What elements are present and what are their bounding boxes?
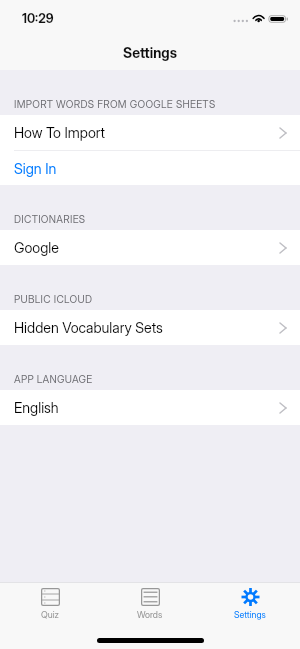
button[interactable]: Quiz [0,583,100,632]
staticText: Quiz [41,609,59,620]
staticText: PUBLIC ICLOUD [14,293,93,305]
staticText: 10:29 [22,11,54,26]
staticText: Words [137,609,163,620]
staticText: Settings [123,44,178,61]
staticText: Hidden Vocabulary Sets [14,319,163,336]
staticText: APP LANGUAGE [14,373,93,385]
button[interactable]: Google [0,230,300,265]
button[interactable]: Settings [200,583,300,632]
staticText: Sign In [14,160,57,177]
staticText: IMPORT WORDS FROM GOOGLE SHEETS [14,98,216,110]
staticText: How To Import [14,124,106,141]
button[interactable]: How To Import [0,115,300,150]
button[interactable]: English [0,390,300,425]
button[interactable]: Words [100,583,200,632]
staticText: Google [14,239,59,256]
staticText: DICTIONARIES [14,213,86,225]
staticText: English [14,399,59,416]
button[interactable]: Sign In [0,151,300,185]
button[interactable]: Hidden Vocabulary Sets [0,310,300,345]
staticText: Settings [234,609,266,620]
